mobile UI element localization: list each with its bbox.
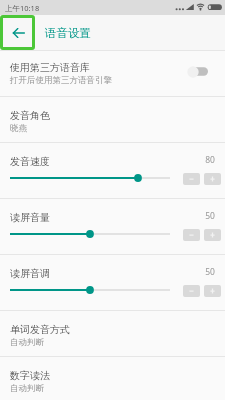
button[interactable]: Decrease [183,173,200,185]
staticText: 读屏音量 [10,211,50,224]
staticText: 单词发音方式 [10,323,70,336]
button[interactable]: Decrease [183,229,200,241]
button[interactable]: 使用第三方语音库 [0,51,225,96]
staticText: 使用第三方语音库 [10,61,90,74]
staticText: 打开后使用第三方语音引擎 [10,75,112,86]
staticText: 晓燕 [10,123,27,134]
staticText: 发音速度 [10,155,50,168]
staticText: 发音角色 [10,109,50,122]
button[interactable]: 单词发音方式 [0,311,225,356]
button[interactable]: Decrease [183,285,200,297]
staticText: 50 [202,210,218,222]
staticText: 自动判断 [10,337,44,348]
button[interactable]: Increase [204,285,221,297]
staticText: 数字读法 [10,369,50,382]
staticText: 自动判断 [10,383,44,394]
staticText: 语音设置 [45,26,91,40]
button[interactable]: Back [0,15,35,50]
staticText: 读屏音调 [10,267,50,280]
button[interactable]: 发音角色 [0,97,225,142]
staticText: 80 [202,154,218,166]
staticText: 50 [202,266,218,278]
button[interactable]: Increase [204,229,221,241]
button[interactable]: Increase [204,173,221,185]
staticText: 上午10:18 [5,3,40,13]
button[interactable]: 数字读法 [0,357,225,400]
